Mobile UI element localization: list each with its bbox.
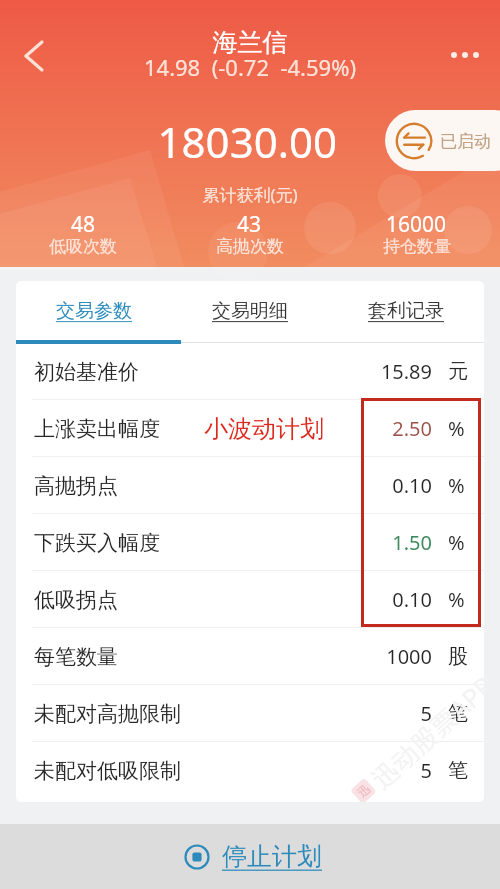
button[interactable]: 套利记录 [328, 281, 484, 340]
staticText: 低吸次数 [49, 236, 117, 257]
staticText: 笔 [448, 701, 468, 726]
staticText: 笔 [448, 758, 468, 783]
button[interactable]: 未配对低吸限制 [16, 742, 484, 799]
staticText: 累计获利(元) [0, 183, 500, 206]
staticText: 5 [348, 700, 432, 727]
staticText: % [448, 472, 465, 499]
button[interactable]: 停止计划 [0, 824, 500, 889]
staticText: 14.98 (-0.72 -4.59%) [0, 52, 500, 82]
staticText: 5 [348, 757, 432, 784]
staticText: 高抛次数 [216, 236, 284, 257]
staticText: 18030.00 [0, 113, 337, 170]
staticText: 未配对高抛限制 [34, 701, 181, 727]
button[interactable]: 交易明细 [172, 281, 328, 340]
staticText: 交易参数 [56, 299, 132, 323]
staticText: 0.10 [348, 586, 432, 613]
staticText: 15.89 [348, 358, 432, 385]
staticText: 低吸拐点 [34, 587, 118, 613]
staticText: 海兰信 [0, 27, 500, 58]
staticText: % [448, 586, 465, 613]
staticText: 已启动 [440, 131, 491, 152]
staticText: 48 [71, 210, 96, 239]
staticText: 迅动股票APP [364, 667, 484, 792]
button[interactable]: 初始基准价 [16, 343, 484, 400]
staticText: 元 [448, 359, 468, 384]
staticText: 下跌买入幅度 [34, 530, 160, 556]
staticText: 小波动计划 [204, 414, 324, 444]
staticText: 16000 [386, 210, 447, 239]
button[interactable]: 交易参数 [16, 281, 172, 340]
button[interactable]: 下跌买入幅度 [16, 514, 484, 571]
button[interactable]: Back [8, 33, 54, 79]
button[interactable]: More options [441, 37, 489, 73]
staticText: 未配对低吸限制 [34, 758, 181, 784]
staticText: 1000 [348, 643, 432, 670]
staticText: 43 [237, 210, 262, 239]
staticText: 上涨卖出幅度 [34, 416, 160, 442]
staticText: % [448, 415, 465, 442]
button[interactable]: 上涨卖出幅度 [16, 400, 484, 457]
button[interactable]: 已启动 [385, 110, 500, 171]
staticText: 股 [448, 644, 468, 669]
button[interactable]: 未配对高抛限制 [16, 685, 484, 742]
staticText: 迅 [354, 781, 373, 800]
button[interactable]: 每笔数量 [16, 628, 484, 685]
staticText: 套利记录 [368, 299, 444, 323]
staticText: % [448, 529, 465, 556]
staticText: 停止计划 [222, 841, 322, 872]
staticText: 每笔数量 [34, 644, 118, 670]
staticText: 1.50 [348, 529, 432, 556]
staticText: 初始基准价 [34, 359, 139, 385]
button[interactable]: 高抛拐点 [16, 457, 484, 514]
staticText: 交易明细 [212, 299, 288, 323]
staticText: 0.10 [348, 472, 432, 499]
staticText: 高抛拐点 [34, 473, 118, 499]
staticText: 持仓数量 [383, 236, 451, 257]
staticText: 2.50 [348, 415, 432, 442]
button[interactable]: 低吸拐点 [16, 571, 484, 628]
